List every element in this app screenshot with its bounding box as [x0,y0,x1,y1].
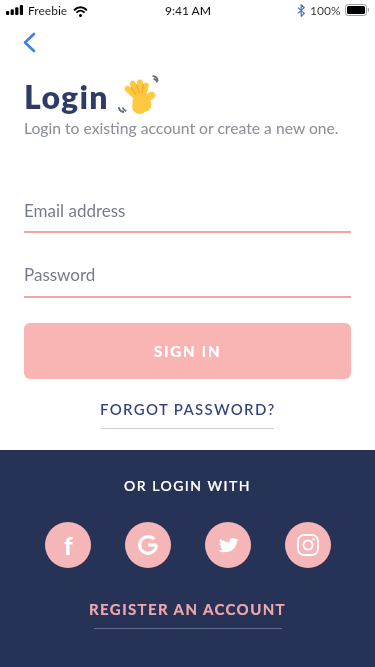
button[interactable]: SIGN IN [24,323,351,379]
staticText: Login to existing account or create a ne… [24,119,339,138]
staticText: FORGOT PASSWORD? [100,400,276,418]
staticText: f [64,531,73,560]
button[interactable] [205,522,251,568]
button[interactable] [13,26,45,58]
button[interactable] [285,522,331,568]
staticText: Password [24,264,96,284]
button[interactable] [125,522,171,568]
staticText: OR LOGIN WITH [0,477,375,494]
staticText: SIGN IN [154,342,222,360]
staticText: 100% [310,3,341,17]
staticText: Freebie [28,3,68,17]
button[interactable]: REGISTER AN ACCOUNT [0,600,375,629]
staticText: REGISTER AN ACCOUNT [89,600,287,618]
staticText: Email address [24,200,126,220]
button[interactable]: f [45,522,91,568]
staticText: Login [24,77,109,115]
button[interactable]: FORGOT PASSWORD? [0,400,375,429]
staticText: 9:41 AM [165,3,211,17]
